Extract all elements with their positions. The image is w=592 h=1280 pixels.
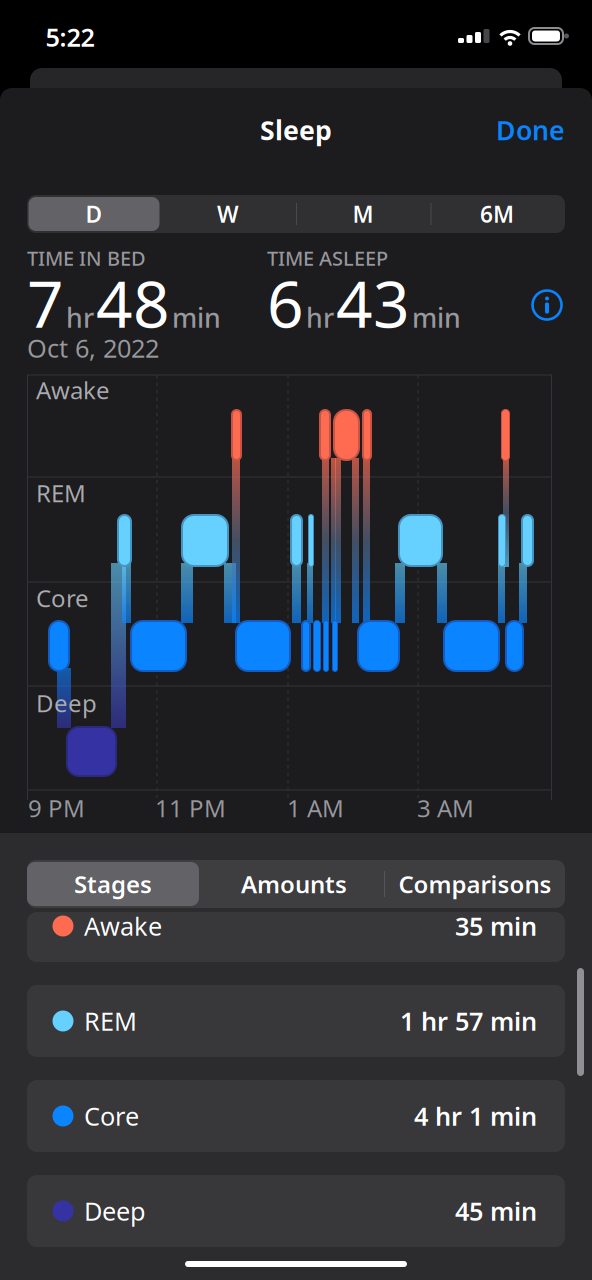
button[interactable]: Deep <box>27 1175 565 1247</box>
button[interactable]: Done <box>475 112 565 148</box>
staticText: 5:22 <box>45 20 94 54</box>
staticText: Core <box>36 582 89 614</box>
staticText: min <box>412 300 461 335</box>
staticText: TIME IN BED <box>27 245 146 271</box>
staticText: Awake <box>36 374 110 406</box>
staticText: 1 AM <box>287 792 344 824</box>
staticText: Awake <box>84 909 162 943</box>
button[interactable]: Core <box>27 1080 565 1152</box>
button[interactable]: Stages <box>27 861 199 907</box>
staticText: Core <box>84 1099 139 1133</box>
staticText: 9 PM <box>28 792 85 824</box>
staticText: D <box>85 199 102 229</box>
staticText: Stages <box>74 868 152 900</box>
staticText: 11 PM <box>155 792 226 824</box>
staticText: 45 min <box>455 1194 537 1228</box>
staticText: W <box>217 199 239 229</box>
staticText: hr <box>66 300 94 335</box>
staticText: REM <box>36 477 86 509</box>
staticText: TIME ASLEEP <box>267 245 388 271</box>
button[interactable]: Awake <box>27 912 565 962</box>
button[interactable]: REM <box>27 985 565 1057</box>
staticText: Oct 6, 2022 <box>27 331 159 365</box>
button[interactable] <box>530 288 564 322</box>
staticText: REM <box>84 1004 137 1038</box>
button[interactable]: Comparisons <box>390 861 560 907</box>
staticText: 4 hr 1 min <box>414 1099 537 1133</box>
staticText: Sleep <box>260 112 332 148</box>
staticText: 6M <box>480 199 514 229</box>
staticText: 1 hr 57 min <box>400 1004 537 1038</box>
staticText: Comparisons <box>398 868 551 900</box>
button[interactable]: M <box>297 196 428 232</box>
staticText: 48 <box>96 260 170 345</box>
staticText: M <box>352 199 373 229</box>
staticText: min <box>172 300 221 335</box>
staticText: Deep <box>36 687 97 719</box>
staticText: Deep <box>84 1194 146 1228</box>
staticText: Amounts <box>241 868 347 900</box>
staticText: 7 <box>27 260 64 345</box>
staticText: 43 <box>336 260 410 345</box>
button[interactable]: W <box>162 196 293 232</box>
staticText: Done <box>496 112 565 148</box>
button[interactable]: D <box>28 196 159 232</box>
staticText: 3 AM <box>417 792 474 824</box>
button[interactable]: 6M <box>431 196 562 232</box>
staticText: hr <box>306 300 334 335</box>
staticText: 6 <box>267 260 304 345</box>
staticText: 35 min <box>455 909 537 943</box>
button[interactable]: Amounts <box>209 861 379 907</box>
